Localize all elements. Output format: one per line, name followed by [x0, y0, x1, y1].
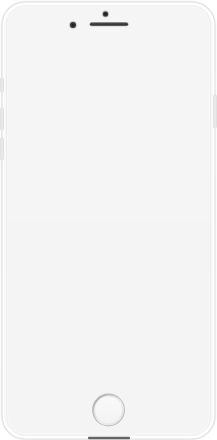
button[interactable]: Home [93, 395, 124, 426]
